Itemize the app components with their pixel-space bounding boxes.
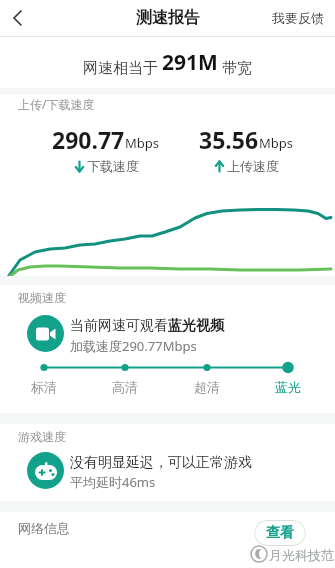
staticText: 加载速度290.77Mbps: [70, 337, 197, 355]
button[interactable]: 我要反馈: [272, 10, 324, 26]
staticText: 平均延时46ms: [70, 473, 156, 491]
staticText: 网速相当于: [83, 57, 162, 77]
staticText: 当前网速可观看蓝光视频: [70, 317, 224, 335]
staticText: 下载速度: [87, 158, 139, 174]
staticText: 35.56: [199, 124, 259, 155]
button[interactable]: [0, 0, 36, 36]
staticText: 没有明显延迟，可以正常游戏: [70, 454, 252, 472]
staticText: 上传速度: [227, 158, 279, 174]
staticText: 291M: [162, 48, 218, 77]
button[interactable]: 标清: [31, 379, 57, 395]
staticText: 网络信息: [18, 520, 70, 536]
staticText: 上传/下载速度: [18, 96, 95, 112]
staticText: 带宽: [218, 57, 252, 77]
staticText: 月光科技范: [269, 547, 334, 563]
button[interactable]: 蓝光: [275, 379, 301, 395]
staticText: 290.77: [52, 124, 125, 155]
button[interactable]: 查看: [254, 520, 306, 546]
button[interactable]: 超清: [194, 379, 220, 395]
staticText: 高清: [112, 379, 138, 395]
staticText: Mbps: [259, 134, 294, 152]
staticText: 标清: [31, 379, 57, 395]
staticText: 超清: [194, 379, 220, 395]
staticText: 游戏速度: [18, 429, 66, 444]
staticText: Mbps: [125, 134, 160, 152]
staticText: 视频速度: [18, 290, 66, 305]
staticText: 查看: [266, 524, 294, 542]
staticText: 我要反馈: [272, 10, 324, 26]
staticText: 蓝光: [275, 379, 301, 395]
staticText: 测速报告: [136, 8, 200, 28]
button[interactable]: 高清: [112, 379, 138, 395]
